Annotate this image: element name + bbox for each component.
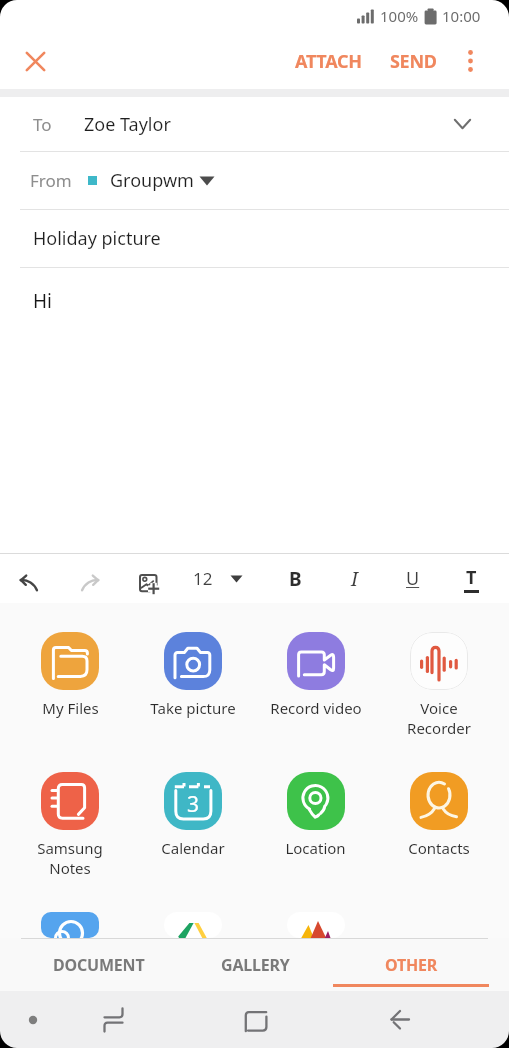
button[interactable]: OTHER	[333, 938, 489, 991]
button[interactable]: Hi	[0, 268, 509, 553]
button[interactable]: I	[332, 554, 376, 603]
staticText: Record video	[270, 698, 362, 718]
button[interactable]	[9, 912, 131, 938]
button[interactable]: Contacts	[377, 772, 500, 858]
staticText: ATTACH	[295, 49, 362, 74]
button[interactable]: To	[0, 97, 509, 151]
button[interactable]: Record video	[254, 632, 377, 718]
button[interactable]: 12	[180, 554, 260, 603]
staticText: Contacts	[408, 838, 470, 858]
staticText: I	[351, 566, 358, 592]
button[interactable]: Location	[254, 772, 377, 858]
button[interactable]: 3	[131, 772, 254, 858]
button[interactable]: From	[0, 152, 509, 209]
button[interactable]: Holiday picture	[0, 210, 509, 267]
button[interactable]	[14, 40, 56, 82]
staticText: Calendar	[161, 838, 225, 858]
button[interactable]: B	[273, 554, 317, 603]
staticText: SEND	[390, 49, 437, 74]
staticText: Hi	[33, 288, 52, 314]
staticText: 3	[187, 790, 200, 819]
staticText: 10:00	[442, 6, 481, 26]
button[interactable]: GALLERY	[177, 938, 333, 991]
staticText: U	[406, 566, 420, 591]
button[interactable]: Voice Recorder	[377, 632, 500, 738]
button[interactable]: U	[391, 554, 435, 603]
button[interactable]: Samsung Notes	[9, 772, 131, 878]
button[interactable]	[233, 998, 277, 1042]
staticText: OTHER	[385, 954, 438, 976]
staticText: Take picture	[150, 698, 236, 718]
button[interactable]	[254, 912, 377, 938]
staticText: Groupwm	[110, 168, 194, 193]
staticText: My Files	[42, 698, 99, 718]
staticText: Holiday picture	[33, 226, 161, 251]
button[interactable]: T	[449, 554, 493, 603]
button[interactable]	[126, 554, 170, 603]
staticText: T	[466, 565, 477, 590]
button[interactable]: ATTACH	[289, 49, 368, 74]
staticText: Location	[285, 838, 346, 858]
staticText: 12	[193, 567, 213, 590]
staticText: To	[33, 113, 52, 136]
staticText: DOCUMENT	[53, 954, 145, 976]
button[interactable]	[7, 554, 51, 603]
button[interactable]: SEND	[384, 49, 443, 74]
button[interactable]	[131, 912, 254, 938]
button[interactable]	[91, 998, 135, 1042]
button[interactable]: Take picture	[131, 632, 254, 718]
staticText: 100%	[380, 6, 419, 26]
staticText: From	[30, 169, 72, 192]
button[interactable]	[448, 39, 492, 83]
button[interactable]: DOCUMENT	[20, 938, 177, 991]
staticText: B	[289, 566, 302, 592]
staticText: Samsung Notes	[37, 838, 103, 878]
button[interactable]: My Files	[9, 632, 131, 718]
button[interactable]	[376, 998, 420, 1042]
staticText: Voice Recorder	[407, 698, 471, 738]
staticText: Zoe Taylor	[84, 112, 171, 137]
button[interactable]	[68, 554, 112, 603]
staticText: GALLERY	[221, 954, 290, 976]
